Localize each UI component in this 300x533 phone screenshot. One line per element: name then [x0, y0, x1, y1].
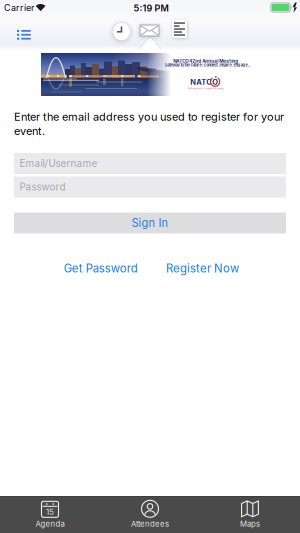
- staticText: NATCO: [190, 77, 218, 86]
- staticText: Agenda: [35, 519, 64, 529]
- button[interactable]: History: [109, 19, 133, 43]
- staticText: Email/Username: [19, 157, 97, 169]
- staticText: The Organization for Transplant Professi…: [187, 88, 223, 90]
- staticText: Sign In: [131, 216, 168, 230]
- button[interactable]: Sign In: [135, 20, 163, 40]
- button[interactable]: Maps: [200, 496, 300, 533]
- staticText: Maps: [240, 519, 260, 529]
- button[interactable]: Register Now: [162, 258, 243, 279]
- staticText: Password: [19, 181, 65, 193]
- staticText: Attendees: [131, 519, 169, 529]
- textField[interactable]: Email/Username: [19, 157, 286, 169]
- staticText: NATCO 42nd Annual Meeting: [173, 58, 238, 64]
- staticText: event.: [14, 124, 45, 137]
- staticText: Email/Username: [19, 157, 97, 169]
- button[interactable]: Notes: [169, 17, 190, 41]
- staticText: Gateway to the Future: Connect. Inspire.…: [164, 63, 250, 67]
- button[interactable]: Get Password: [60, 258, 142, 279]
- secureTextField[interactable]: Password: [19, 181, 286, 193]
- button[interactable]: 15: [0, 496, 100, 533]
- staticText: Enter the email address you used to regi…: [14, 110, 284, 123]
- staticText: Password: [19, 181, 65, 193]
- staticText: 15: [46, 507, 54, 517]
- staticText: Register Now: [166, 262, 239, 275]
- button[interactable]: Sign In: [14, 212, 286, 233]
- button[interactable]: Attendees: [100, 496, 200, 533]
- button[interactable]: Menu: [8, 18, 36, 42]
- staticText: Get Password: [64, 262, 138, 275]
- staticText: Carrier: [4, 2, 34, 13]
- staticText: 5:19 PM: [133, 3, 168, 14]
